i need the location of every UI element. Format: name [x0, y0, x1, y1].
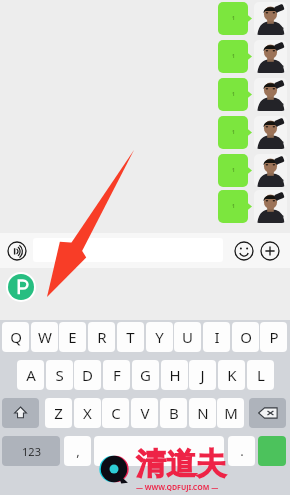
staticText: M: [224, 403, 238, 423]
button[interactable]: H: [161, 360, 188, 390]
button[interactable]: I: [203, 322, 230, 352]
button[interactable]: D: [74, 360, 101, 390]
staticText: X: [83, 403, 92, 423]
staticText: 清道夫: [136, 445, 226, 483]
staticText: 1: [232, 129, 235, 136]
staticText: H: [169, 365, 181, 385]
staticText: 123: [22, 444, 41, 459]
button[interactable]: Contact avatar: [254, 40, 287, 73]
staticText: L: [257, 365, 265, 385]
staticText: O: [240, 327, 252, 347]
button[interactable]: Z: [45, 398, 72, 428]
button[interactable]: Send: [258, 436, 286, 466]
button[interactable]: Q: [2, 322, 29, 352]
button[interactable]: X: [74, 398, 101, 428]
button[interactable]: N: [189, 398, 216, 428]
staticText: 1: [232, 167, 235, 174]
button[interactable]: W: [31, 322, 58, 352]
button[interactable]: K: [218, 360, 245, 390]
button[interactable]: T: [117, 322, 144, 352]
staticText: Q: [10, 327, 22, 347]
button[interactable]: 123: [2, 436, 60, 466]
button[interactable]: Space: [94, 436, 224, 466]
button[interactable]: V: [131, 398, 158, 428]
staticText: J: [200, 365, 205, 385]
staticText: Z: [54, 403, 63, 423]
staticText: C: [111, 403, 121, 423]
staticText: G: [140, 365, 151, 385]
button[interactable]: Voice input: [6, 240, 28, 262]
button[interactable]: J: [189, 360, 216, 390]
button[interactable]: Contact avatar: [254, 116, 287, 149]
staticText: P: [269, 327, 279, 347]
button[interactable]: Contact avatar: [254, 154, 287, 187]
staticText: 1: [232, 203, 235, 210]
button[interactable]: Contact avatar: [254, 78, 287, 111]
staticText: W: [38, 327, 52, 347]
button[interactable]: G: [132, 360, 159, 390]
button[interactable]: O: [232, 322, 259, 352]
button[interactable]: Y: [146, 322, 173, 352]
button[interactable]: Backspace: [249, 398, 286, 428]
button[interactable]: Input method switcher: [8, 274, 34, 300]
button[interactable]: B: [160, 398, 187, 428]
staticText: K: [227, 365, 237, 385]
staticText: 1: [232, 91, 235, 98]
button[interactable]: 1: [218, 190, 248, 223]
button[interactable]: 1: [218, 154, 248, 187]
staticText: 1: [232, 53, 235, 60]
button[interactable]: 1: [218, 40, 248, 73]
button[interactable]: 1: [218, 78, 248, 111]
button[interactable]: .: [228, 436, 255, 466]
button[interactable]: 1: [218, 2, 248, 35]
button[interactable]: ,: [64, 436, 91, 466]
staticText: Y: [155, 327, 164, 347]
staticText: V: [140, 403, 150, 423]
button[interactable]: M: [217, 398, 244, 428]
staticText: T: [126, 327, 135, 347]
staticText: R: [97, 327, 107, 347]
staticText: A: [26, 365, 36, 385]
button[interactable]: Message input: [33, 238, 223, 262]
button[interactable]: Emoji: [233, 240, 255, 262]
staticText: ,: [76, 442, 80, 460]
button[interactable]: S: [46, 360, 73, 390]
staticText: D: [82, 365, 93, 385]
staticText: — WWW.QDFUJI.COM —: [136, 483, 219, 493]
button[interactable]: More options: [259, 240, 281, 262]
button[interactable]: L: [247, 360, 274, 390]
staticText: 1: [232, 15, 235, 22]
button[interactable]: 1: [218, 116, 248, 149]
button[interactable]: P: [260, 322, 287, 352]
button[interactable]: U: [174, 322, 201, 352]
button[interactable]: A: [17, 360, 44, 390]
button[interactable]: E: [59, 322, 86, 352]
button[interactable]: Contact avatar: [254, 190, 287, 223]
staticText: U: [182, 327, 193, 347]
staticText: N: [197, 403, 209, 423]
button[interactable]: R: [88, 322, 115, 352]
staticText: I: [214, 327, 220, 347]
staticText: .: [240, 442, 244, 460]
button[interactable]: Contact avatar: [254, 2, 287, 35]
button[interactable]: C: [102, 398, 129, 428]
staticText: B: [169, 403, 179, 423]
staticText: E: [68, 327, 77, 347]
button[interactable]: Shift: [2, 398, 39, 428]
staticText: F: [113, 365, 121, 385]
button[interactable]: F: [103, 360, 130, 390]
staticText: S: [55, 365, 64, 385]
